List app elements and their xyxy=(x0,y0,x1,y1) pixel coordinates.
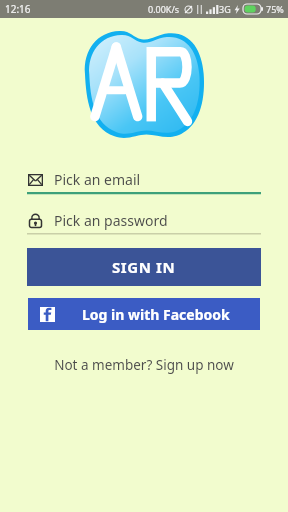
button[interactable]: SIGN IN xyxy=(27,248,261,286)
staticText: Log in with Facebook xyxy=(82,305,230,324)
other: AR logo xyxy=(81,23,207,143)
staticText: Pick an email xyxy=(54,170,141,189)
staticText: Not a member? Sign up now xyxy=(54,356,234,374)
other: Facebook xyxy=(40,307,55,322)
staticText: 75% xyxy=(266,3,284,15)
button[interactable]: Pick a password xyxy=(27,207,261,236)
staticText: SIGN IN xyxy=(112,257,176,277)
button[interactable]: Pick an email xyxy=(27,166,261,195)
staticText: Pick an password xyxy=(54,211,168,230)
staticText: 12:16 xyxy=(5,2,31,16)
button[interactable]: Not a member? Sign up now xyxy=(0,356,288,374)
button[interactable]: Facebook xyxy=(28,298,260,330)
staticText: 0.00K/s xyxy=(148,3,180,15)
staticText: 3G xyxy=(219,3,231,15)
